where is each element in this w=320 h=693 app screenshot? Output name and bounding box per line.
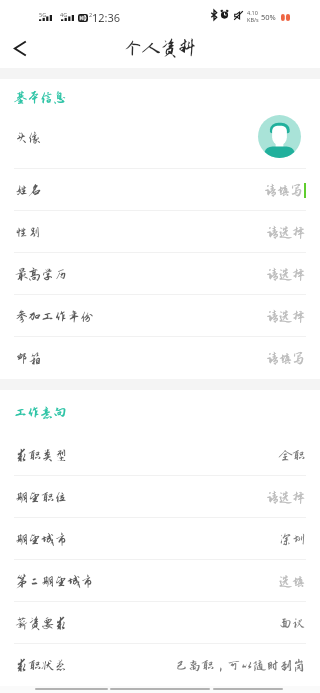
staticText: 选填 [279, 574, 306, 589]
staticText: 请选择 [266, 309, 306, 324]
button[interactable]: 期望职位 [0, 476, 320, 518]
staticText: 4.10 [247, 9, 258, 16]
staticText: 求职类型 [15, 448, 68, 463]
staticText: 第二期望城市 [15, 574, 94, 589]
staticText: KB/s [247, 16, 259, 23]
button[interactable]: Back [35, 688, 108, 693]
staticText: 薪资要求 [15, 616, 68, 631]
staticText: 期望职位 [15, 490, 68, 505]
button[interactable]: 邮箱 [0, 337, 320, 379]
staticText: 基本信息 [14, 90, 67, 105]
button[interactable]: Home [110, 688, 210, 693]
staticText: 性别 [15, 225, 42, 240]
staticText: 请选择 [266, 490, 306, 505]
button[interactable]: 参加工作年份 [0, 295, 320, 337]
staticText: 请选择 [266, 225, 306, 240]
staticText: 请填写 [266, 351, 306, 366]
staticText: 4G [60, 11, 68, 18]
staticText: 期望城市 [15, 532, 68, 547]
staticText: 工作意向 [14, 405, 67, 420]
staticText: 深圳 [279, 532, 306, 547]
staticText: 姓名 [15, 183, 42, 198]
staticText: 请填写 [264, 183, 304, 198]
staticText: 已离职，可以随时到岗 [175, 658, 306, 673]
button[interactable]: Back [0, 28, 38, 68]
staticText: 求职状态 [15, 658, 68, 673]
staticText: 12:36 [92, 10, 121, 25]
staticText: 50% [261, 12, 276, 22]
staticText: 邮箱 [15, 351, 42, 366]
staticText: 参加工作年份 [15, 309, 94, 324]
button[interactable]: 第二期望城市 [0, 560, 320, 602]
button[interactable]: 最高学历 [0, 253, 320, 295]
staticText: 全职 [279, 448, 306, 463]
button[interactable]: 薪资要求 [0, 602, 320, 644]
button[interactable]: 求职状态 [0, 644, 320, 686]
staticText: 最高学历 [15, 267, 68, 282]
button[interactable]: 性别 [0, 211, 320, 253]
staticText: 个人资料 [124, 38, 196, 58]
button[interactable]: 头像 [0, 106, 320, 169]
staticText: 2 [89, 11, 93, 18]
button[interactable]: Recents [213, 688, 283, 693]
staticText: 头像 [15, 130, 42, 145]
staticText: 5G [39, 11, 47, 18]
staticText: 面议 [279, 616, 306, 631]
staticText: 请选择 [266, 267, 306, 282]
button[interactable]: 姓名 [0, 169, 320, 211]
button[interactable]: 求职类型 [0, 434, 320, 476]
button[interactable]: 期望城市 [0, 518, 320, 560]
